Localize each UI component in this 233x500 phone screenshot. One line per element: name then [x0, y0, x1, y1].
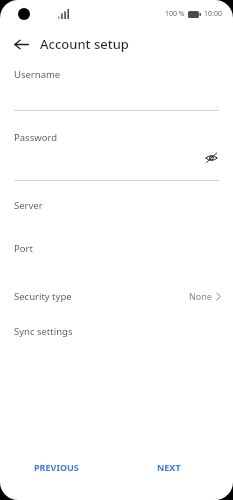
staticText: NEXT [157, 461, 181, 473]
staticText: Password [14, 131, 57, 144]
button[interactable]: NEXT [149, 456, 189, 478]
button[interactable]: Show password [199, 145, 223, 169]
button[interactable]: Sync settings [0, 322, 233, 340]
staticText: Server [14, 199, 43, 212]
staticText: Account setup [40, 35, 129, 53]
button[interactable]: Security type [0, 287, 233, 305]
staticText: Port [14, 242, 33, 255]
staticText: Username [14, 68, 61, 81]
staticText: Security type [14, 290, 72, 303]
staticText: Sync settings [14, 325, 73, 338]
button[interactable]: PREVIOUS [26, 456, 87, 478]
button[interactable]: Back [8, 31, 34, 57]
staticText: 100 % [165, 9, 185, 19]
staticText: 10:00 [204, 9, 222, 19]
staticText: None [189, 290, 212, 302]
staticText: PREVIOUS [34, 461, 79, 473]
